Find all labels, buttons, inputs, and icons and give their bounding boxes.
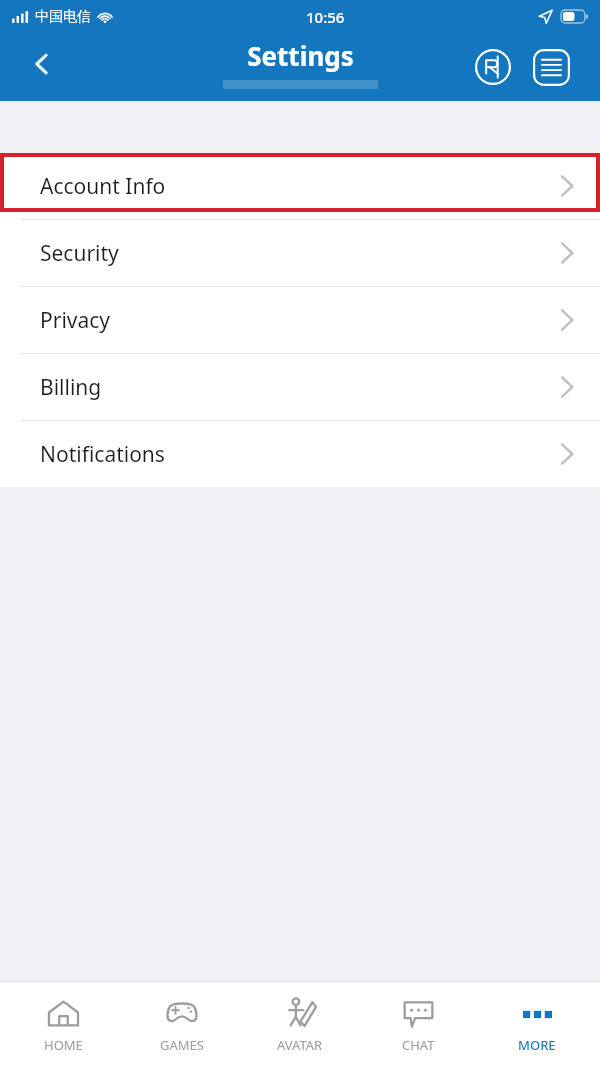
staticText: HOME [44, 1036, 83, 1054]
button[interactable]: Menu [528, 44, 574, 90]
staticText: AVATAR [277, 1036, 323, 1054]
button[interactable]: Billing [0, 354, 600, 420]
button[interactable]: Privacy [0, 287, 600, 353]
button[interactable]: Account Info [0, 153, 600, 219]
staticText: 10:56 [306, 7, 345, 27]
button[interactable]: HOME [8, 988, 118, 1062]
staticText: Settings [247, 38, 354, 73]
button[interactable]: Security [0, 220, 600, 286]
button[interactable]: GAMES [127, 988, 237, 1062]
button[interactable]: Back [18, 40, 66, 88]
button[interactable]: CHAT [363, 988, 473, 1062]
staticText: Billing [40, 373, 102, 402]
staticText: GAMES [160, 1036, 204, 1054]
staticText: CHAT [402, 1036, 435, 1054]
staticText: Security [40, 239, 119, 268]
staticText: Account Info [40, 172, 166, 201]
staticText: 中国电信 [35, 8, 91, 26]
staticText: Notifications [40, 440, 165, 469]
button[interactable]: Notifications [0, 421, 600, 487]
button[interactable]: AVATAR [245, 988, 355, 1062]
staticText: MORE [518, 1036, 556, 1054]
staticText: Privacy [40, 306, 111, 335]
button[interactable]: MORE [482, 988, 592, 1062]
button[interactable]: Robux [470, 44, 516, 90]
